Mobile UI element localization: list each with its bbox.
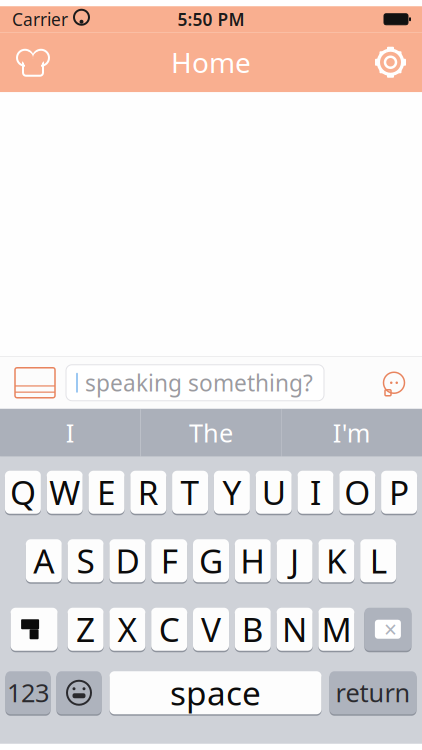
staticText: Home <box>171 44 251 81</box>
staticText: O <box>344 470 370 514</box>
staticText: L <box>370 538 387 583</box>
staticText: × <box>384 614 397 644</box>
button[interactable]: J <box>277 539 313 584</box>
staticText: F <box>161 538 178 583</box>
button[interactable]: T <box>172 471 208 515</box>
button[interactable]: D <box>109 539 145 584</box>
staticText: 5:50 PM <box>177 8 244 31</box>
staticText: return <box>335 676 410 709</box>
button[interactable]: Z <box>68 608 104 652</box>
button[interactable]: C <box>151 608 187 652</box>
staticText: T <box>181 470 200 514</box>
staticText: X <box>117 607 137 651</box>
button[interactable]: W <box>47 471 83 515</box>
staticText: Y <box>222 470 241 514</box>
button[interactable]: X <box>109 608 145 652</box>
staticText: M <box>321 607 351 651</box>
staticText: space <box>170 670 261 715</box>
staticText: G <box>199 538 223 583</box>
staticText: I <box>66 416 75 449</box>
staticText: C <box>159 607 180 651</box>
button[interactable]: return <box>329 671 416 716</box>
staticText: J <box>290 538 299 583</box>
staticText: A <box>33 538 54 583</box>
staticText: Z <box>76 607 95 651</box>
button[interactable]: Emoji <box>56 671 101 716</box>
button[interactable]: The <box>141 409 281 456</box>
button[interactable]: Favorites <box>0 39 62 85</box>
staticText: speaking something? <box>85 368 313 398</box>
button[interactable]: P <box>381 471 417 515</box>
button[interactable]: O <box>339 471 375 515</box>
button[interactable]: I'm <box>282 409 422 456</box>
button[interactable]: Delete <box>364 608 411 652</box>
button[interactable]: Y <box>214 471 250 515</box>
button[interactable]: L <box>360 539 396 584</box>
button[interactable]: N <box>277 608 313 652</box>
button[interactable]: Phrase cards <box>0 357 66 409</box>
button[interactable]: M <box>318 608 354 652</box>
staticText: K <box>326 538 347 583</box>
button[interactable]: I <box>297 471 333 515</box>
button[interactable]: I <box>0 409 140 456</box>
staticText: Q <box>10 470 36 514</box>
staticText: V <box>201 607 221 651</box>
staticText: I'm <box>333 416 371 449</box>
staticText: W <box>49 470 80 514</box>
staticText: S <box>77 538 95 583</box>
button[interactable]: 123 <box>5 671 50 716</box>
staticText: P <box>389 470 409 514</box>
staticText: E <box>97 470 116 514</box>
staticText: N <box>282 607 307 651</box>
button[interactable]: E <box>88 471 124 515</box>
button[interactable]: Shift <box>11 608 58 652</box>
button[interactable]: U <box>256 471 292 515</box>
staticText: U <box>262 470 286 514</box>
staticText: R <box>138 470 159 514</box>
button[interactable]: F <box>151 539 187 584</box>
button[interactable]: Q <box>5 471 41 515</box>
staticText: The <box>189 416 233 449</box>
button[interactable]: space <box>109 671 321 716</box>
staticText: 123 <box>7 676 49 709</box>
button[interactable]: S <box>68 539 104 584</box>
button[interactable]: G <box>193 539 229 584</box>
staticText: D <box>115 538 139 583</box>
button[interactable]: Settings <box>363 39 422 85</box>
staticText: Carrier <box>12 8 68 31</box>
button[interactable]: H <box>235 539 271 584</box>
button[interactable]: Conversation <box>372 357 422 409</box>
button[interactable]: R <box>130 471 166 515</box>
staticText: I <box>310 470 321 514</box>
button[interactable]: V <box>193 608 229 652</box>
button[interactable]: K <box>318 539 354 584</box>
staticText: B <box>242 607 264 651</box>
button[interactable]: A <box>26 539 62 584</box>
button[interactable]: B <box>235 608 271 652</box>
staticText: H <box>240 538 265 583</box>
